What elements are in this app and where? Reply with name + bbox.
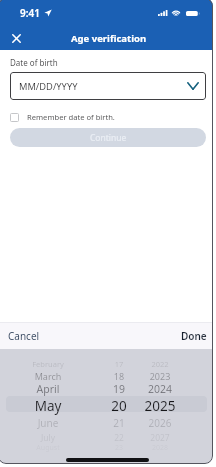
button[interactable]: MM/DD/YYYY — [10, 72, 206, 100]
button[interactable]: Done — [181, 329, 207, 343]
staticText: June — [3, 416, 93, 430]
staticText: May — [3, 397, 93, 415]
staticText: February — [3, 359, 93, 369]
staticText: 2025 — [115, 397, 205, 415]
staticText: 17 — [74, 359, 164, 369]
staticText: 19 — [74, 382, 164, 396]
staticText: Continue — [90, 132, 127, 144]
staticText: Remember date of birth. — [27, 112, 115, 122]
staticText: April — [3, 382, 93, 396]
staticText: 2022 — [115, 359, 205, 369]
staticText: Done — [181, 329, 207, 343]
button[interactable]: Remember date of birth. — [10, 112, 115, 122]
staticText: 21 — [74, 416, 164, 430]
button[interactable]: Close — [0, 26, 32, 50]
staticText: Date of birth — [10, 57, 58, 68]
staticText: 2024 — [115, 382, 205, 396]
button[interactable]: Continue — [10, 128, 206, 147]
staticText: Age verification — [71, 32, 147, 45]
staticText: Cancel — [8, 329, 40, 343]
staticText: MM/DD/YYYY — [19, 80, 78, 93]
staticText: 9:41 — [20, 6, 40, 20]
staticText: 20 — [74, 397, 164, 415]
staticText: 2023 — [115, 370, 205, 382]
staticText: March — [3, 370, 93, 382]
staticText: 18 — [74, 370, 164, 382]
staticText: 2026 — [115, 416, 205, 430]
button[interactable]: Cancel — [8, 329, 40, 343]
